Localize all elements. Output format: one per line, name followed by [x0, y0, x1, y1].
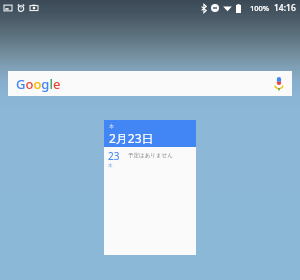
staticText: 100%: [250, 3, 270, 13]
staticText: 木: [109, 123, 114, 129]
button[interactable]: 23: [104, 147, 196, 169]
button[interactable]: Google: [8, 71, 292, 96]
staticText: 予定はありません: [128, 152, 173, 159]
staticText: Google: [16, 75, 61, 93]
button[interactable]: 木: [104, 120, 196, 255]
staticText: 14:16: [274, 2, 296, 14]
staticText: 23: [108, 149, 120, 163]
button[interactable]: Voice search: [274, 76, 284, 91]
staticText: 2月23日: [109, 130, 154, 146]
staticText: 木: [108, 163, 113, 169]
